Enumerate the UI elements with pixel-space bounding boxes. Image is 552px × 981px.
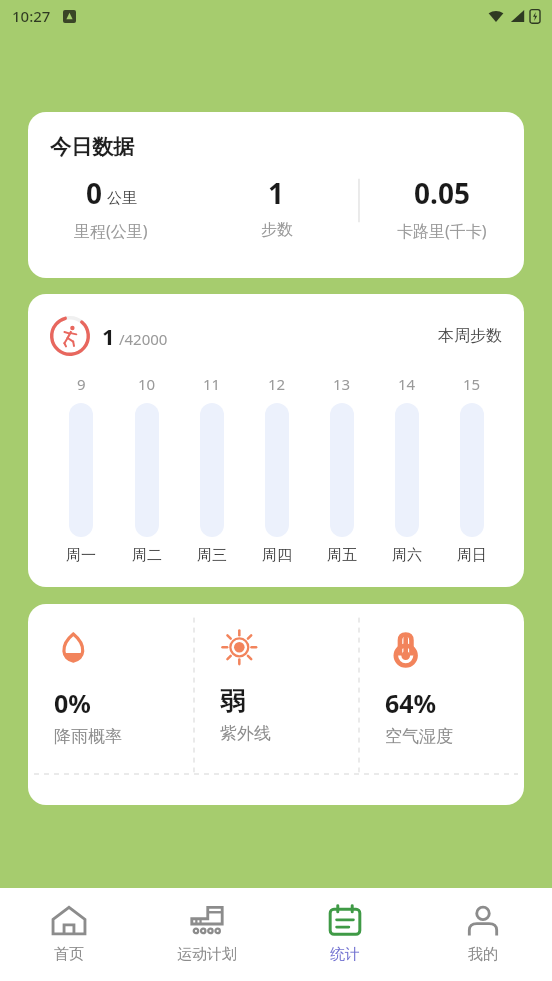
- staticText: 9: [77, 374, 86, 394]
- button[interactable]: 首页: [0, 888, 138, 981]
- staticText: 里程(公里): [74, 220, 148, 242]
- staticText: 周四: [262, 546, 292, 565]
- staticText: 弱: [220, 686, 245, 717]
- staticText: /42000: [115, 329, 168, 349]
- staticText: 降雨概率: [54, 726, 122, 747]
- staticText: 我的: [468, 945, 498, 964]
- staticText: 本周步数: [438, 326, 502, 346]
- staticText: 1: [268, 174, 285, 212]
- staticText: 11: [203, 374, 221, 394]
- staticText: 1: [102, 321, 115, 351]
- staticText: 10:27: [12, 6, 51, 26]
- staticText: 周三: [197, 546, 227, 565]
- staticText: 运动计划: [177, 945, 237, 964]
- button[interactable]: 0%: [28, 604, 524, 805]
- staticText: 64%: [385, 686, 437, 720]
- staticText: 周二: [132, 546, 162, 565]
- staticText: 统计: [330, 945, 360, 964]
- staticText: 周六: [392, 546, 422, 565]
- button[interactable]: 弱: [194, 604, 359, 774]
- staticText: 周一: [66, 546, 96, 565]
- button[interactable]: 0%: [28, 604, 194, 774]
- button[interactable]: 运动计划: [138, 888, 276, 981]
- button[interactable]: 今日数据: [28, 112, 524, 278]
- staticText: 今日数据: [50, 134, 134, 160]
- staticText: 10: [138, 374, 156, 394]
- button[interactable]: 统计: [276, 888, 414, 981]
- staticText: 0%: [54, 686, 91, 720]
- staticText: 空气湿度: [385, 726, 453, 747]
- button[interactable]: 1: [28, 294, 524, 587]
- staticText: 卡路里(千卡): [397, 220, 487, 242]
- staticText: 紫外线: [220, 723, 271, 744]
- staticText: 0.05: [414, 174, 470, 212]
- staticText: 首页: [54, 945, 84, 964]
- staticText: 步数: [261, 220, 293, 240]
- staticText: 15: [463, 374, 481, 394]
- staticText: 周五: [327, 546, 357, 565]
- staticText: 14: [398, 374, 416, 394]
- staticText: 周日: [457, 546, 487, 565]
- button[interactable]: 64%: [359, 604, 524, 774]
- button[interactable]: 我的: [414, 888, 552, 981]
- staticText: 0: [86, 174, 103, 212]
- staticText: 12: [268, 374, 286, 394]
- staticText: 公里: [107, 189, 137, 208]
- staticText: 13: [333, 374, 351, 394]
